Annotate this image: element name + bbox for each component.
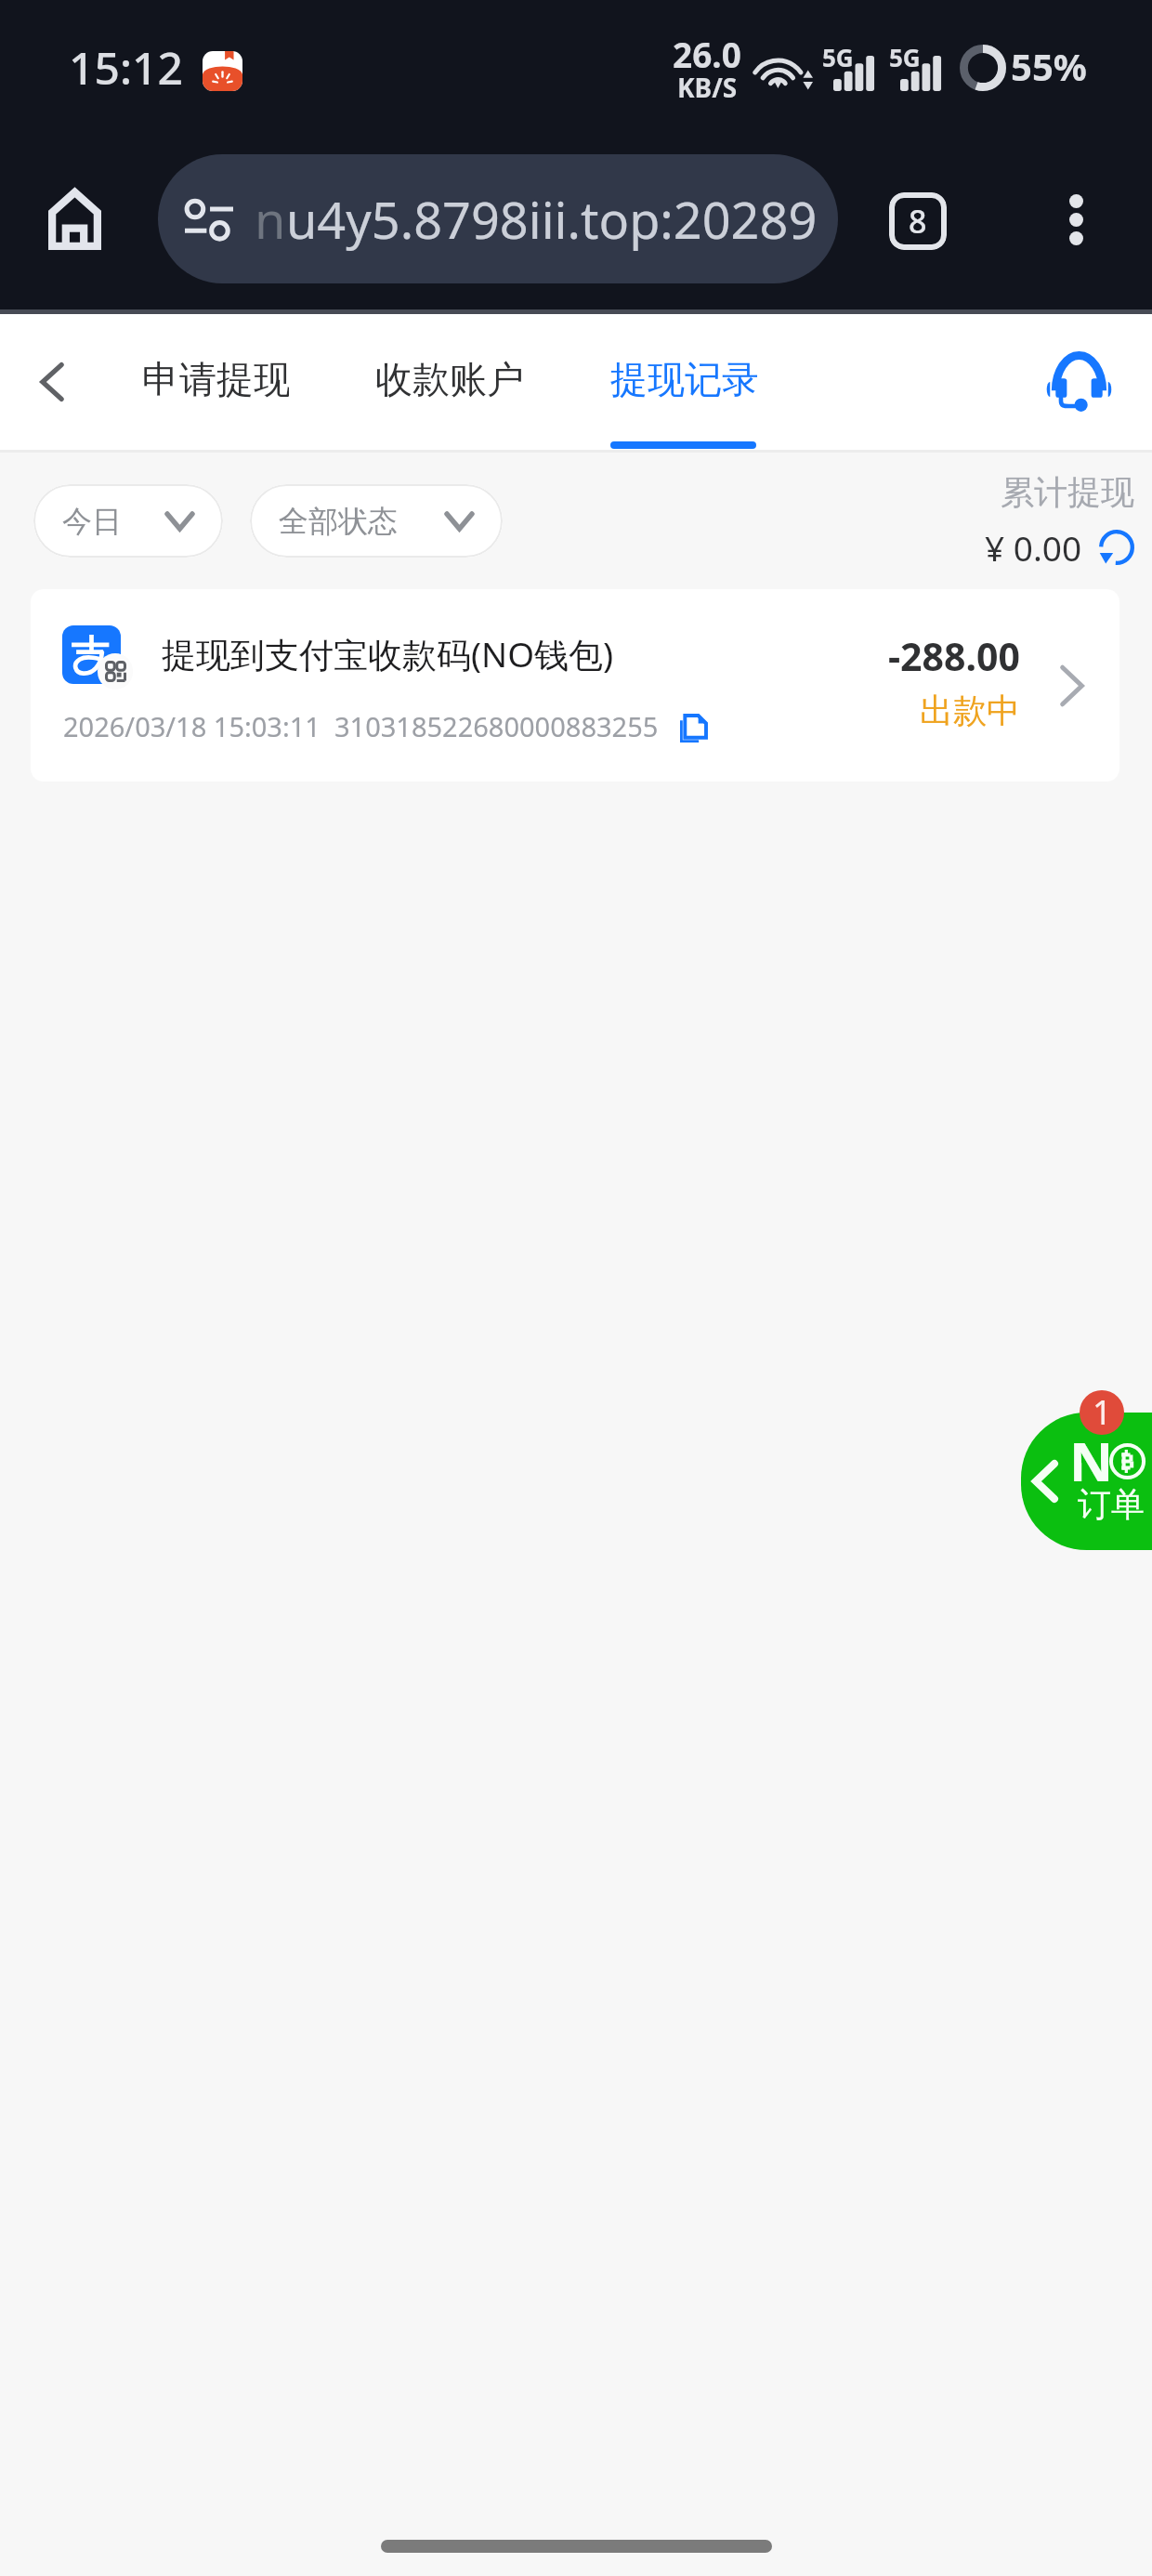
staticText: N [1069,1424,1114,1497]
staticText: 出款中 [920,690,1020,731]
button[interactable]: Home [39,184,110,255]
staticText: 5G [822,41,854,73]
staticText: KB/S [677,70,738,105]
button[interactable]: 提现到支付宝收款码(NO钱包) [31,589,1119,782]
button[interactable]: Back [15,345,89,419]
staticText: 累计提现 [1001,471,1134,513]
staticText: 26.0 [673,31,741,77]
staticText: 今日 [62,503,122,540]
staticText: -288.00 [888,630,1020,682]
staticText: 提现到支付宝收款码(NO钱包) [162,630,614,677]
button[interactable]: 全部状态 [250,484,503,558]
button[interactable]: Refresh [1099,530,1134,565]
button[interactable]: More options [1039,182,1113,256]
staticText: 2026/03/18 15:03:11 31031852268000088325… [63,708,659,744]
button[interactable]: 今日 [33,484,223,558]
staticText: 申请提现 [142,356,289,402]
staticText: 55% [1011,41,1087,91]
staticText: n [255,185,286,254]
staticText: 收款账户 [375,356,522,402]
staticText: 8 [909,200,927,243]
button[interactable]: 收款账户 [375,314,522,450]
button[interactable]: Copy [677,716,709,743]
staticText: 5G [889,41,921,73]
staticText: u4y5.8798iii.top:20289 [286,185,818,254]
button[interactable]: 申请提现 [142,314,289,450]
staticText: 1 [1093,1390,1112,1434]
staticText: ¥ 0.00 [985,524,1082,571]
staticText: 提现记录 [610,356,757,402]
staticText: 15:12 [69,37,183,98]
button[interactable]: Address bar [158,154,838,283]
button[interactable]: Customer service [1041,344,1117,420]
button[interactable]: 提现记录 [610,314,757,450]
button[interactable]: Tabs [879,182,957,260]
button[interactable]: NO订单 [1021,1413,1152,1550]
staticText: 订单 [1078,1483,1145,1525]
staticText: 全部状态 [279,503,398,540]
